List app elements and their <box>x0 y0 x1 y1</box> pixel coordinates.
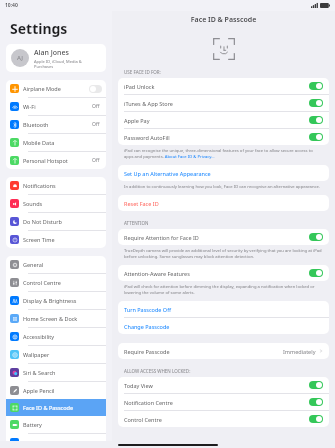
button[interactable]: Require Passcode <box>118 343 329 359</box>
button[interactable]: Apple Pencil <box>6 382 106 399</box>
staticText: iPad Unlock <box>124 83 309 90</box>
staticText: Battery <box>23 421 102 428</box>
button[interactable]: Sounds <box>6 195 106 212</box>
staticText: Attention-Aware Features <box>124 270 309 277</box>
staticText: Off <box>92 103 100 110</box>
button[interactable]: Battery <box>6 416 106 433</box>
staticText: Face ID & Passcode <box>23 404 102 411</box>
button[interactable]: iPad Unlock <box>118 78 329 94</box>
button[interactable]: Airplane Mode <box>6 80 106 97</box>
button[interactable]: Mobile Data <box>6 134 106 151</box>
staticText: Apple ID, iCloud, Media & Purchases <box>34 59 101 69</box>
staticText: Apple Pay <box>124 117 309 124</box>
button[interactable]: Notifications <box>6 177 106 194</box>
button[interactable]: General <box>6 256 106 273</box>
button[interactable]: Wi-Fi <box>6 98 106 115</box>
staticText: Wi-Fi <box>23 103 92 110</box>
button[interactable]: Notification Centre <box>118 394 329 410</box>
staticText: Do Not Disturb <box>23 218 102 225</box>
staticText: ALLOW ACCESS WHEN LOCKED: <box>124 368 191 374</box>
staticText: Bluetooth <box>23 121 92 128</box>
staticText: Personal Hotspot <box>23 157 92 164</box>
staticText: Siri & Search <box>23 369 102 376</box>
staticText: Control Centre <box>23 279 102 286</box>
staticText: Accessibility <box>23 333 102 340</box>
staticText: Notification Centre <box>124 399 309 406</box>
staticText: Screen Time <box>23 236 102 243</box>
staticText: Home Screen & Dock <box>23 315 102 322</box>
button[interactable]: Control Centre <box>6 274 106 291</box>
button[interactable]: Face ID & Passcode <box>6 399 106 416</box>
staticText: Immediately <box>283 348 316 355</box>
button[interactable]: Do Not Disturb <box>6 213 106 230</box>
staticText: TrueDepth camera will provide an additio… <box>124 248 323 260</box>
staticText: Face ID & Passcode <box>112 15 335 25</box>
button[interactable]: Screen Time <box>6 231 106 248</box>
staticText: Alan Jones <box>34 48 69 58</box>
button[interactable]: Wallpaper <box>6 346 106 363</box>
button[interactable]: Privacy <box>6 434 106 441</box>
staticText: Today View <box>124 382 309 389</box>
staticText: Off <box>92 157 100 164</box>
staticText: Display & Brightness <box>23 297 102 304</box>
staticText: Wallpaper <box>23 351 102 358</box>
staticText: Apple Pencil <box>23 387 102 394</box>
button[interactable]: Siri & Search <box>6 364 106 381</box>
button[interactable]: AJ <box>6 44 106 72</box>
button[interactable]: Reset Face ID <box>118 195 329 211</box>
staticText: Require Passcode <box>124 348 283 355</box>
button[interactable]: Accessibility <box>6 328 106 345</box>
staticText: Sounds <box>23 200 102 207</box>
staticText: Reset Face ID <box>124 200 159 207</box>
staticText: Off <box>92 121 100 128</box>
staticText: AJ <box>17 54 23 62</box>
button[interactable]: Today View <box>118 377 329 393</box>
staticText: iPad will check for attention before dim… <box>124 284 323 296</box>
button[interactable]: Apple Pay <box>118 112 329 128</box>
button[interactable]: Home Screen & Dock <box>6 310 106 327</box>
staticText: iTunes & App Store <box>124 100 309 107</box>
staticText: USE FACE ID FOR: <box>124 69 161 75</box>
button[interactable]: Display & Brightness <box>6 292 106 309</box>
button[interactable]: Password AutoFill <box>118 129 329 145</box>
staticText: iPad can recognise the unique, three-dim… <box>124 148 323 160</box>
button[interactable]: Require Attention for Face ID <box>118 229 329 245</box>
staticText: In addition to continuously learning how… <box>124 184 321 190</box>
staticText: ATTENTION <box>124 220 149 226</box>
button[interactable]: Change Passcode <box>118 318 329 334</box>
button[interactable]: Turn Passcode Off <box>118 301 329 317</box>
button[interactable]: Bluetooth <box>6 116 106 133</box>
staticText: Control Centre <box>124 416 309 423</box>
button[interactable]: Attention-Aware Features <box>118 265 329 281</box>
staticText: 10:40 <box>5 2 18 9</box>
staticText: Require Attention for Face ID <box>124 234 309 241</box>
button[interactable]: Personal Hotspot <box>6 152 106 169</box>
staticText: Change Passcode <box>124 323 170 330</box>
staticText: General <box>23 261 102 268</box>
button[interactable]: iTunes & App Store <box>118 95 329 111</box>
staticText: Notifications <box>23 182 102 189</box>
staticText: Mobile Data <box>23 139 102 146</box>
staticText: Set Up an Alternative Appearance <box>124 170 211 177</box>
staticText: Settings <box>10 19 68 38</box>
staticText: Password AutoFill <box>124 134 309 141</box>
staticText: Airplane Mode <box>23 85 89 92</box>
button[interactable]: Set Up an Alternative Appearance <box>118 165 329 181</box>
staticText: Turn Passcode Off <box>124 306 171 313</box>
button[interactable]: Control Centre <box>118 411 329 427</box>
